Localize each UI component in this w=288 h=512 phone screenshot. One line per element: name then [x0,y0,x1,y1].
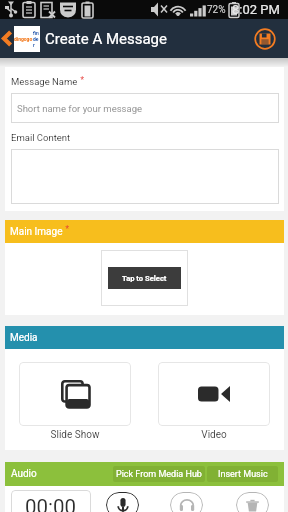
button[interactable] [19,362,131,426]
button[interactable]: Pick From Media Hub [113,466,205,482]
button[interactable] [158,362,270,426]
staticText: Slide Show [19,429,131,441]
staticText: Pick From Media Hub [116,469,202,480]
button[interactable]: Tap to Select [101,250,188,306]
staticText: Tap to Select [122,274,167,283]
staticText: Message Name [11,76,78,87]
staticText: 72% [207,4,226,16]
button[interactable]: Media [5,326,284,349]
button[interactable]: Insert Music [207,466,278,482]
staticText: 8:02 PM [232,2,280,17]
staticText: Audio [11,468,37,480]
staticText: Video [158,429,270,441]
button[interactable]: Main Image [5,220,284,243]
staticText: Main Image [10,226,63,238]
button[interactable]: Delete [236,492,269,512]
staticText: Short name for your message [17,103,143,114]
staticText: Media [10,332,38,344]
button[interactable]: Back [0,19,14,58]
staticText: dingogo [14,36,33,42]
staticText: Create A Message [45,30,167,48]
staticText: * [78,75,85,86]
button[interactable]: 00:00 [11,490,91,512]
button[interactable]: Save [254,28,276,50]
button[interactable]: Listen [170,492,203,512]
staticText: Insert Music [218,469,268,480]
staticText: finder [33,30,40,48]
staticText: * [63,224,70,235]
button[interactable]: Record [106,492,139,512]
staticText: Email Content [11,132,71,143]
button[interactable] [11,149,279,204]
button[interactable]: Short name for your message [11,93,279,123]
staticText: 00:00 [25,495,77,512]
